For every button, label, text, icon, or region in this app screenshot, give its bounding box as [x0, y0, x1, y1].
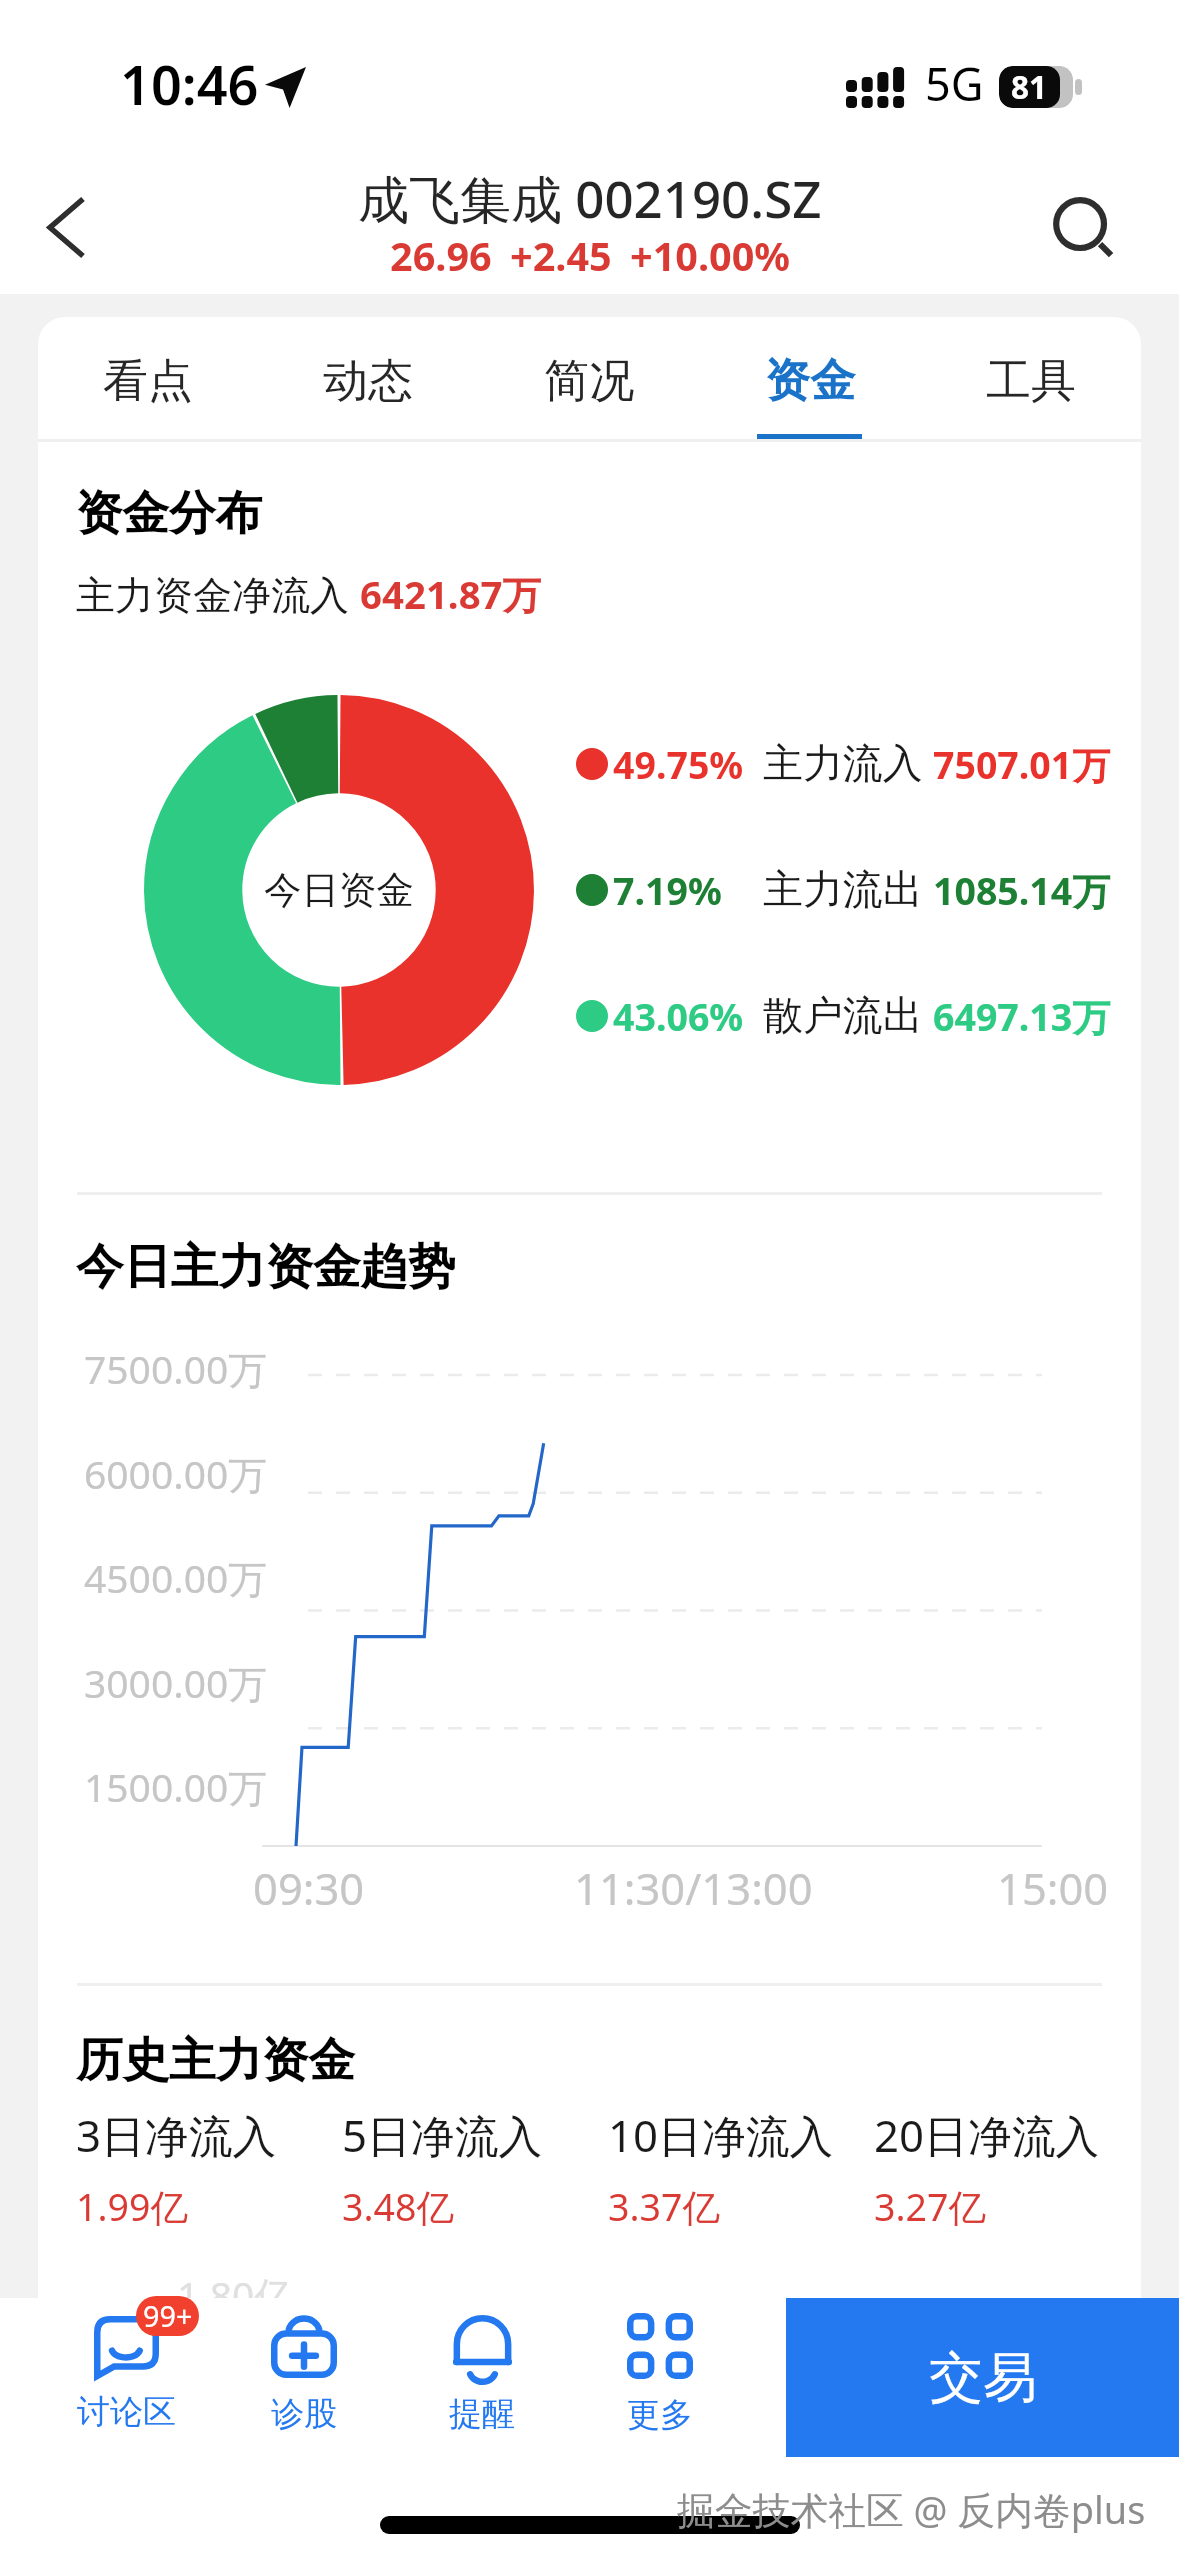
staticText: 掘金技术社区 @ 反内卷plus [677, 2484, 1146, 2536]
staticText: +10.00% [630, 229, 791, 283]
button[interactable]: 诊股 [215, 2298, 393, 2457]
button[interactable]: Search [1017, 161, 1152, 296]
staticText: 诊股 [271, 2393, 337, 2435]
staticText: 3.37亿 [608, 2181, 720, 2232]
button[interactable]: 99+ [37, 2298, 215, 2457]
staticText: 动态 [323, 353, 413, 410]
staticText: 3日净流入 [76, 2105, 277, 2165]
button[interactable]: 简况 [478, 317, 699, 442]
staticText: 今日主力资金趋势 [76, 1237, 456, 1297]
staticText: 43.06% [613, 991, 744, 1042]
staticText: 7507.01万 [933, 739, 1110, 790]
staticText: 5G [925, 53, 984, 114]
staticText: 99+ [143, 2296, 193, 2335]
staticText: 10:46 [120, 47, 259, 121]
button[interactable]: 资金 [699, 317, 920, 442]
staticText: 简况 [544, 353, 634, 410]
button[interactable]: 提醒 [393, 2298, 571, 2457]
button[interactable]: 更多 [571, 2298, 749, 2457]
staticText: 更多 [627, 2394, 693, 2436]
staticText: 3.48亿 [342, 2181, 454, 2232]
staticText: 6000.00万 [84, 1447, 268, 1500]
staticText: 主力流出 [763, 865, 923, 915]
staticText: 资金分布 [76, 484, 262, 543]
staticText: 成飞集成 002190.SZ [358, 163, 822, 233]
staticText: 资金 [765, 353, 855, 410]
staticText: 交易 [929, 2344, 1037, 2412]
staticText: 09:30 [253, 1858, 365, 1917]
staticText: 历史主力资金 [76, 2031, 355, 2090]
staticText: 7.19% [613, 865, 722, 916]
staticText: 26.96 [390, 229, 492, 283]
button[interactable]: 交易 [786, 2298, 1179, 2457]
staticText: 3000.00万 [84, 1656, 268, 1709]
staticText: 10日净流入 [608, 2105, 834, 2165]
staticText: 1500.00万 [84, 1760, 268, 1813]
button[interactable]: 工具 [920, 317, 1141, 442]
staticText: 1.99亿 [76, 2181, 188, 2232]
staticText: 81 [1011, 66, 1048, 107]
staticText: 15:00 [997, 1858, 1109, 1917]
button[interactable]: 看点 [38, 317, 258, 442]
staticText: 今日资金 [264, 867, 414, 914]
staticText: 1.80亿 [177, 2268, 294, 2321]
staticText: 3.27亿 [874, 2181, 986, 2232]
staticText: 讨论区 [77, 2391, 176, 2433]
staticText: 6421.87万 [360, 568, 541, 620]
staticText: 49.75% [613, 739, 744, 790]
staticText: 提醒 [449, 2393, 515, 2435]
staticText: 看点 [103, 353, 193, 410]
staticText: 7500.00万 [84, 1342, 268, 1395]
button[interactable]: 动态 [258, 317, 478, 442]
staticText: 20日净流入 [874, 2105, 1100, 2165]
staticText: 散户流出 [763, 991, 923, 1041]
staticText: 主力资金净流入 [76, 567, 360, 620]
staticText: +2.45 [510, 229, 612, 283]
button[interactable]: Back [0, 160, 135, 295]
staticText: 5日净流入 [342, 2105, 543, 2165]
staticText: 11:30/13:00 [574, 1858, 813, 1917]
staticText: 1085.14万 [933, 865, 1110, 916]
staticText: 主力流入 [763, 739, 923, 789]
staticText: 工具 [986, 353, 1076, 410]
staticText: 6497.13万 [933, 991, 1110, 1042]
staticText: 4500.00万 [84, 1551, 268, 1604]
